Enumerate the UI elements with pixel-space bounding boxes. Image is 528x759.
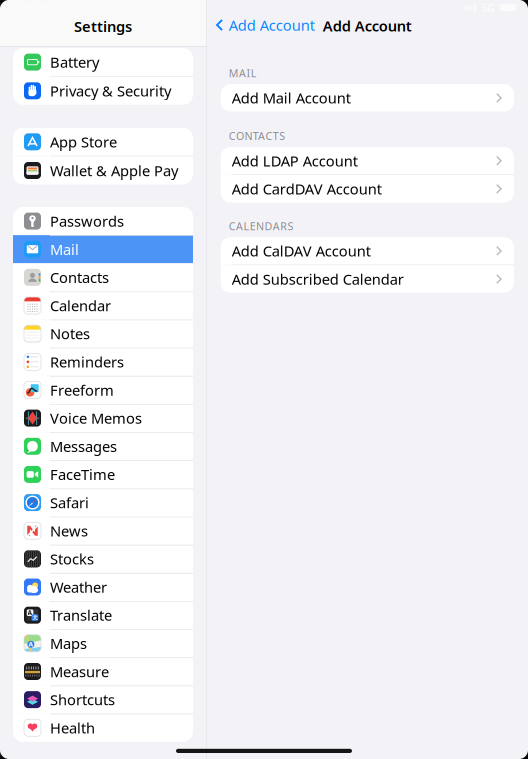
button[interactable]: Reminders [13, 348, 193, 376]
staticText: Add CardDAV Account [232, 179, 382, 199]
staticText: Measure [50, 662, 109, 681]
staticText: Contacts [50, 268, 109, 287]
staticText: Notes [50, 324, 90, 343]
button[interactable]: Weather [13, 573, 193, 601]
button[interactable]: App Store [13, 128, 193, 156]
staticText: Weather [50, 577, 107, 597]
staticText: 5G [481, 0, 495, 15]
staticText: Add Account [229, 15, 315, 35]
button[interactable]: Calendar [13, 291, 193, 319]
button[interactable]: Add Mail Account [221, 84, 514, 112]
staticText: MAIL [229, 66, 257, 80]
button[interactable]: Privacy & Security [13, 77, 193, 105]
button[interactable]: Health [13, 714, 193, 742]
staticText: Add CalDAV Account [232, 241, 371, 261]
button[interactable]: Safari [13, 488, 193, 517]
staticText: Health [50, 718, 95, 737]
button[interactable]: Shortcuts [13, 685, 193, 714]
staticText: A [28, 608, 33, 617]
staticText: News [50, 521, 88, 540]
staticText: Privacy & Security [50, 81, 171, 101]
staticText: Settings [74, 16, 132, 36]
staticText: A [28, 639, 33, 648]
button[interactable]: Voice Memos [13, 404, 193, 432]
button[interactable]: Freeform [13, 376, 193, 404]
button[interactable]: Add CalDAV Account [221, 237, 514, 264]
staticText: FaceTime [50, 465, 115, 484]
staticText: CALENDARS [229, 219, 293, 233]
button[interactable]: Wallet & Apple Pay [13, 156, 193, 184]
staticText: Add LDAP Account [232, 151, 358, 170]
staticText: Messages [50, 436, 117, 456]
staticText: Battery [50, 52, 99, 72]
staticText: Maps [50, 634, 87, 653]
button[interactable]: Passwords [13, 207, 193, 235]
staticText: Voice Memos [50, 408, 142, 428]
staticText: Stocks [50, 549, 94, 569]
staticText: Reminders [50, 352, 124, 372]
button[interactable]: Add LDAP Account [221, 147, 514, 174]
staticText: Passwords [50, 211, 124, 231]
button[interactable]: News [13, 517, 193, 545]
staticText: Translate [50, 605, 112, 625]
staticText: Add Subscribed Calendar [232, 269, 404, 289]
button[interactable]: Battery [13, 48, 193, 76]
button[interactable]: FaceTime [13, 460, 193, 488]
staticText: Mail [50, 239, 79, 259]
button[interactable]: Add CardDAV Account [221, 175, 514, 202]
button[interactable]: Mail [13, 235, 193, 263]
button[interactable]: Add Account [207, 11, 315, 39]
staticText: Wallet & Apple Pay [50, 161, 178, 180]
button[interactable]: Measure [13, 657, 193, 685]
button[interactable]: A [13, 629, 193, 657]
staticText: CONTACTS [229, 129, 285, 143]
staticText: Add Mail Account [232, 88, 351, 108]
button[interactable]: Notes [13, 320, 193, 348]
button[interactable]: Add Subscribed Calendar [221, 265, 514, 293]
button[interactable]: Contacts [13, 263, 193, 291]
staticText: Add Account [323, 16, 412, 35]
button[interactable]: Messages [13, 432, 193, 460]
button[interactable]: Stocks [13, 545, 193, 573]
staticText: Freeform [50, 380, 114, 400]
button[interactable]: A [13, 601, 193, 629]
staticText: Shortcuts [50, 690, 115, 709]
staticText: Safari [50, 493, 89, 512]
staticText: 文 [32, 614, 37, 621]
staticText: Calendar [50, 296, 111, 315]
staticText: App Store [50, 132, 117, 152]
